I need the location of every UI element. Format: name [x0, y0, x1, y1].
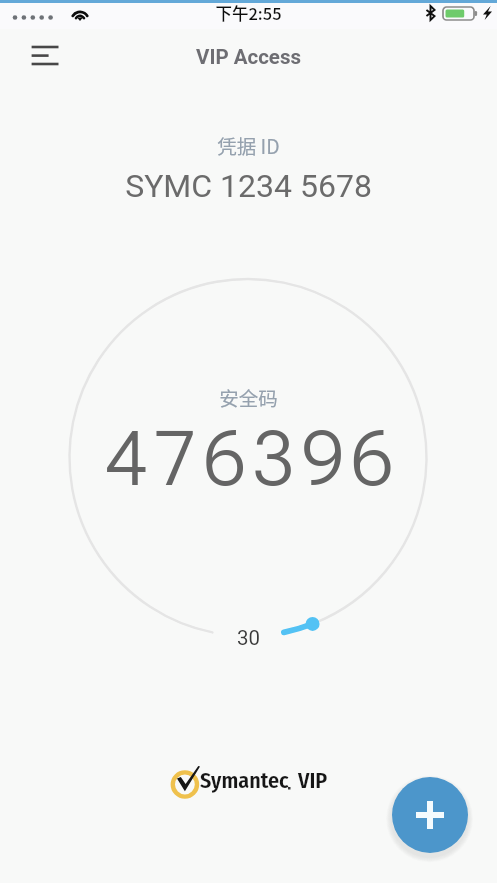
staticText: SYMC 1234 5678 — [0, 167, 497, 205]
staticText: VIP Access — [0, 45, 497, 69]
button[interactable]: Add credential — [392, 777, 468, 853]
staticText: 下午2:55 — [0, 1, 497, 25]
button[interactable]: Menu — [20, 35, 70, 77]
staticText: 30 — [237, 626, 261, 650]
staticText: 476396 — [4, 415, 497, 503]
staticText: VIP — [298, 767, 328, 793]
staticText: 凭据 ID — [0, 131, 497, 159]
staticText: Symantec — [200, 767, 289, 793]
staticText: 安全码 — [0, 383, 497, 411]
